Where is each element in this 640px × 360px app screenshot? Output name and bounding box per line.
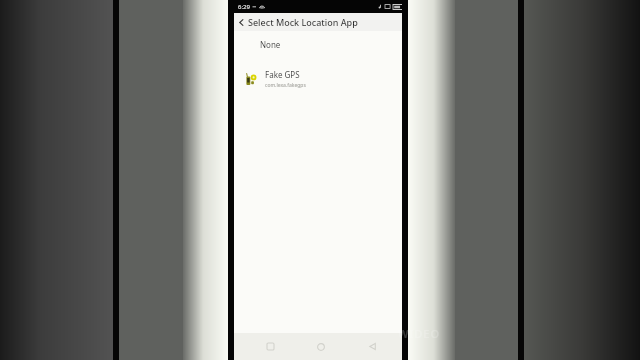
button[interactable]: Home [306,333,336,360]
button[interactable]: Recent apps [255,333,285,360]
staticText: Select Mock Location App [248,16,358,28]
staticText: None [260,39,281,50]
staticText: WIDEO [398,326,441,341]
button[interactable]: Fake GPS [234,64,408,94]
staticText: com.lexa.fakegps [265,82,306,89]
staticText: Fake GPS [265,69,300,80]
button[interactable]: Back [234,13,248,31]
button[interactable]: None [234,31,408,57]
staticText: 6:29 [238,3,250,11]
button[interactable]: Back [357,333,387,360]
